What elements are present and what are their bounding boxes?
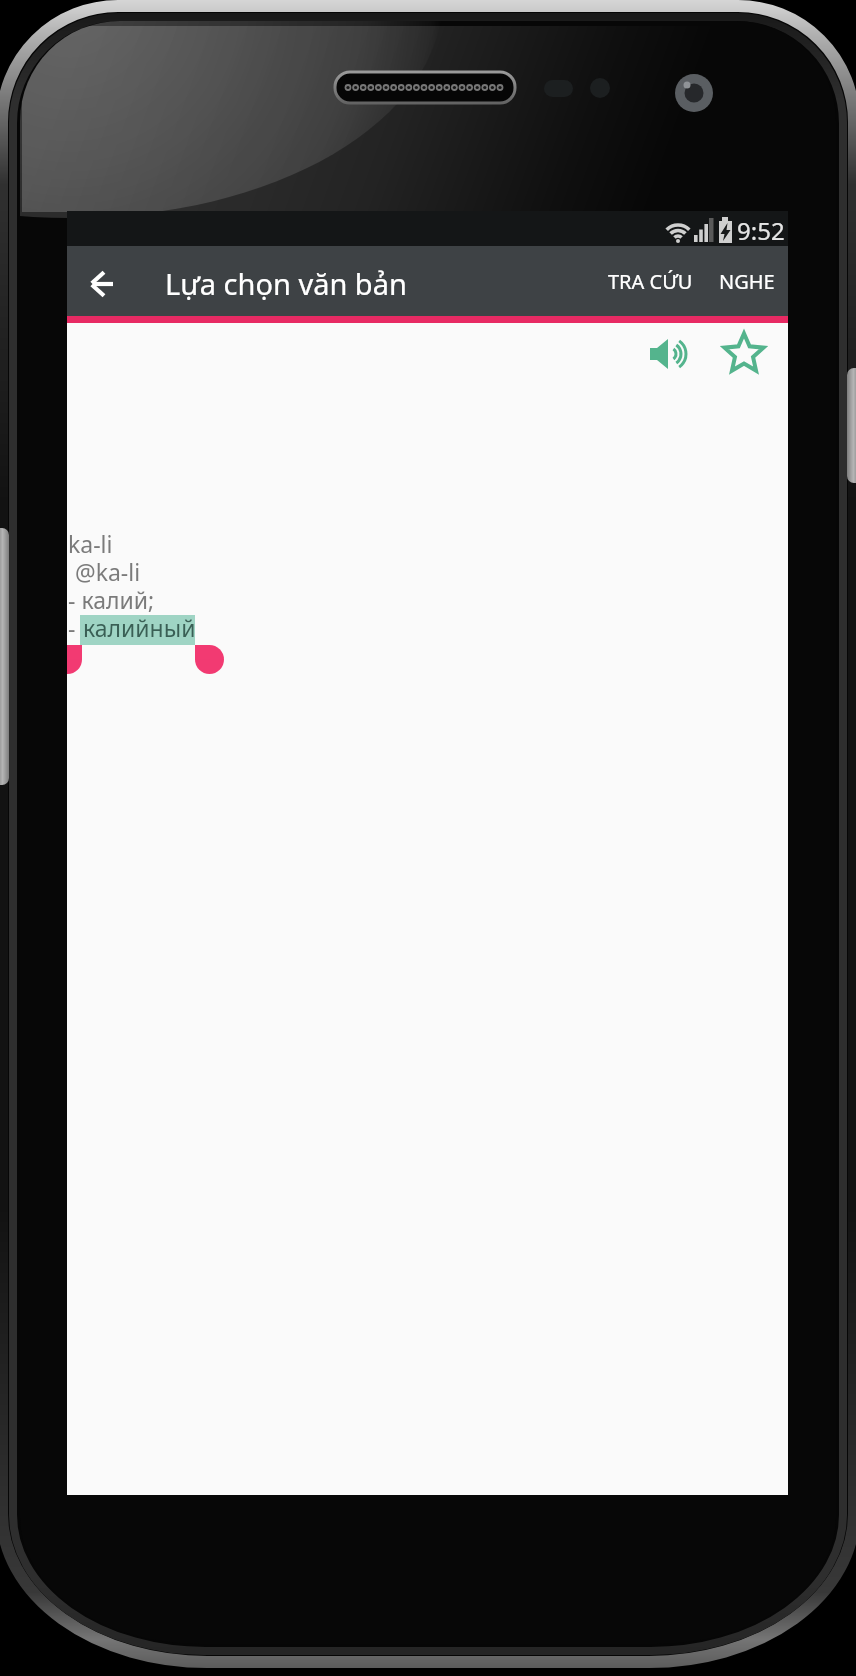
button[interactable]: NGHE	[712, 254, 782, 308]
button[interactable]: TRA CỨU	[598, 254, 702, 308]
button[interactable]	[722, 332, 768, 378]
staticText: Lựa chọn văn bản	[165, 264, 407, 303]
staticText: @ka-li	[75, 556, 141, 587]
staticText: -	[68, 612, 82, 643]
staticText: - калий;	[68, 584, 155, 615]
staticText: калийный	[83, 612, 196, 643]
button[interactable]	[77, 256, 127, 306]
staticText: NGHE	[719, 268, 775, 295]
staticText: TRA CỨU	[608, 268, 693, 295]
staticText: 9:52	[737, 214, 785, 247]
staticText: ka-li	[68, 528, 113, 559]
button[interactable]	[642, 332, 694, 376]
